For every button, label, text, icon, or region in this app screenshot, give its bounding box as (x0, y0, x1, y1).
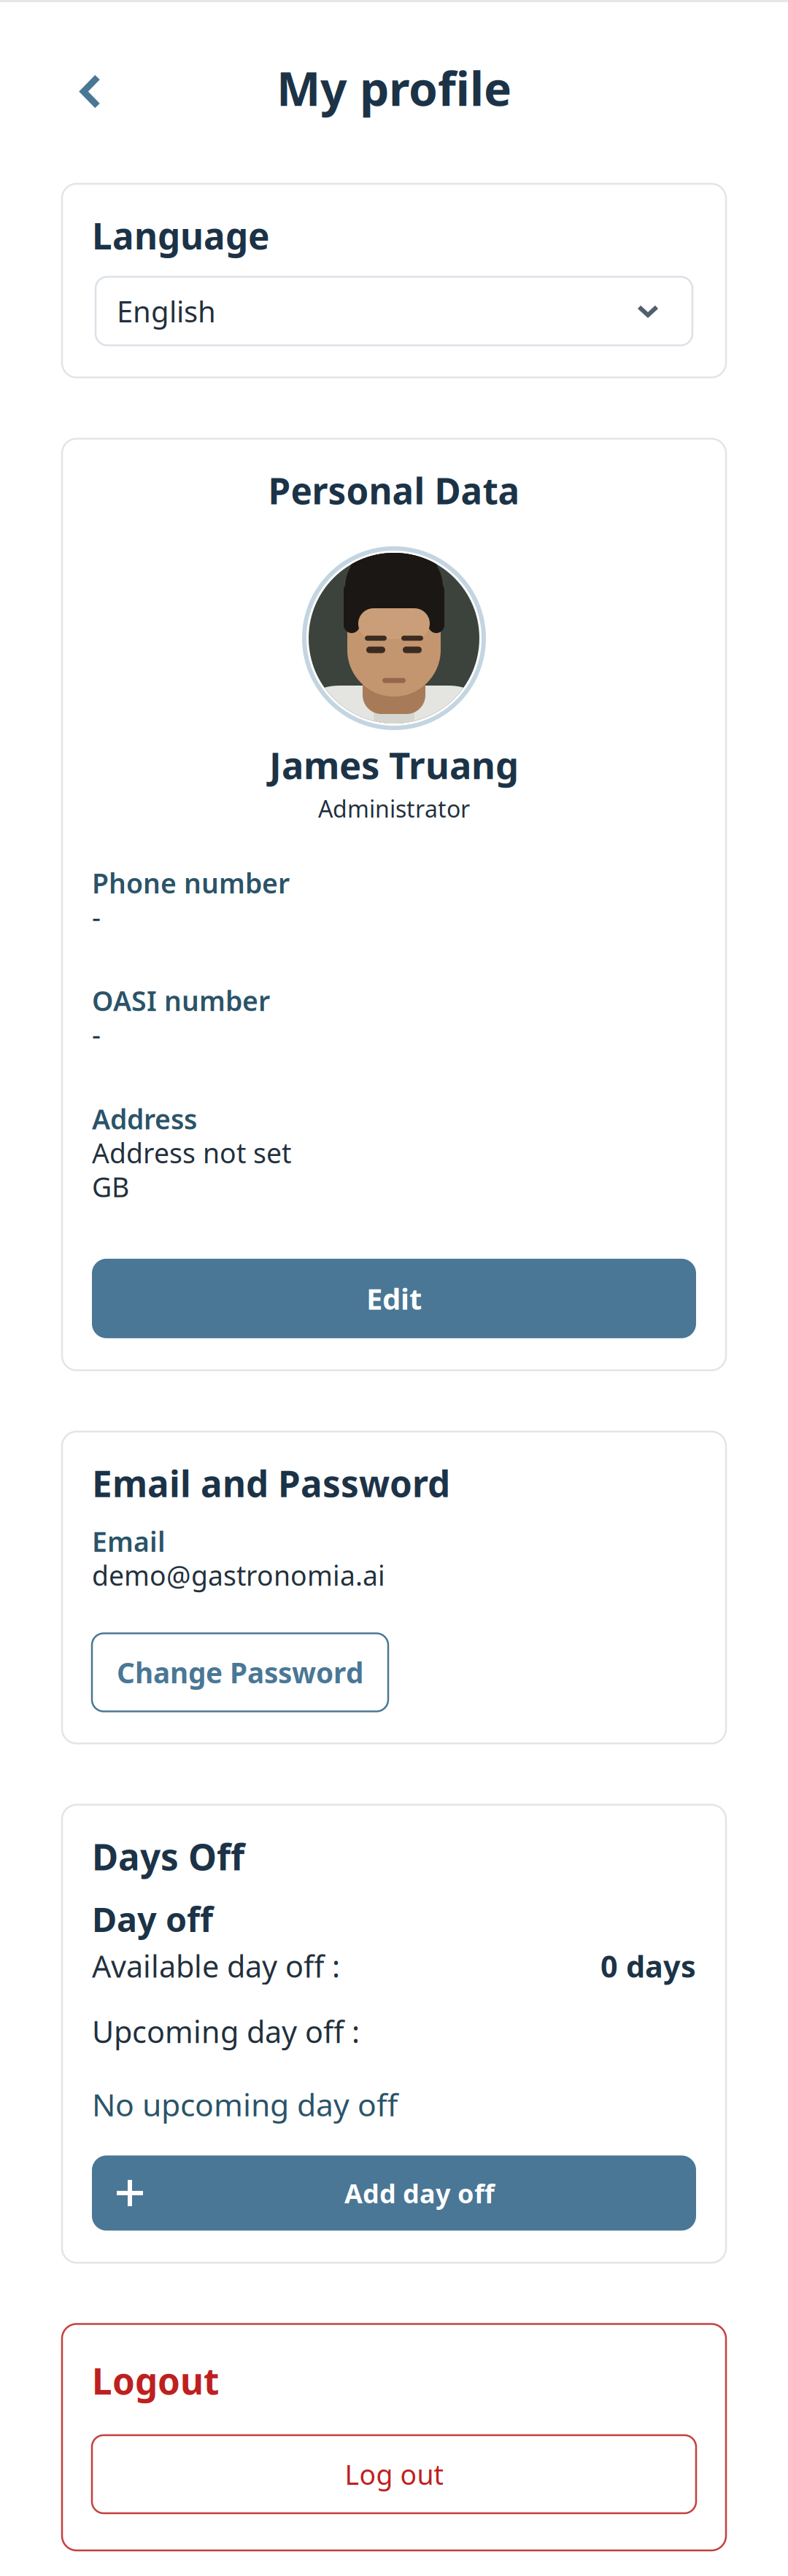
staticText: Log out (345, 2456, 443, 2492)
staticText: Change Password (117, 1654, 363, 1691)
staticText: Address (92, 1101, 197, 1137)
staticText: GB (92, 1169, 129, 1205)
button[interactable]: Edit (92, 1259, 696, 1338)
staticText: Add day off (344, 2176, 495, 2210)
staticText: James Truang (269, 740, 519, 789)
staticText: Day off (92, 1896, 213, 1941)
button[interactable]: Log out (92, 2435, 696, 2513)
staticText: demo@gastronomia.ai (92, 1557, 385, 1593)
staticText: - (92, 1016, 101, 1052)
staticText: Personal Data (268, 466, 520, 514)
button[interactable]: Add day off (92, 2155, 696, 2231)
staticText: Available day off : (92, 1946, 340, 1986)
staticText: Upcoming day off : (92, 2011, 360, 2051)
staticText: My profile (277, 57, 511, 119)
staticText: Edit (366, 1279, 422, 1318)
button[interactable]: Change Password (92, 1633, 388, 1711)
staticText: Logout (92, 2357, 219, 2405)
staticText: Language (92, 212, 269, 259)
button[interactable]: English (92, 277, 696, 345)
staticText: Days Off (92, 1832, 244, 1880)
staticText: 0 days (600, 1946, 696, 1986)
staticText: Administrator (318, 793, 470, 824)
staticText: Email (92, 1523, 166, 1559)
staticText: Address not set (92, 1135, 291, 1171)
staticText: - (92, 899, 101, 935)
staticText: Email and Password (92, 1459, 450, 1507)
staticText: OASI number (92, 982, 270, 1019)
staticText: No upcoming day off (92, 2084, 398, 2125)
staticText: Phone number (92, 865, 290, 901)
button[interactable]: Back (0, 44, 130, 132)
staticText: English (117, 292, 216, 330)
